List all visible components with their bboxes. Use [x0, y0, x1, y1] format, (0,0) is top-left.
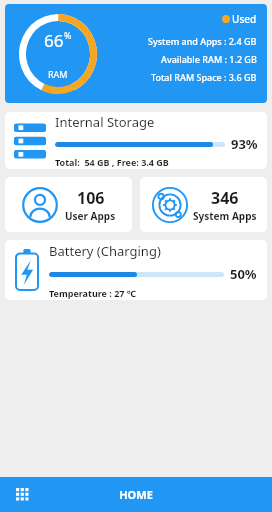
- button[interactable]: Apps grid: [0, 477, 272, 512]
- staticText: %: [64, 29, 72, 41]
- staticText: RAM: [48, 68, 68, 80]
- other: Battery charging: [15, 249, 39, 291]
- staticText: 50%: [230, 265, 257, 283]
- other: User apps: [21, 186, 59, 224]
- staticText: Battery (Charging): [49, 242, 161, 260]
- other: Storage: [14, 123, 46, 159]
- staticText: Internal Storage: [55, 113, 155, 131]
- staticText: User Apps: [65, 209, 116, 223]
- staticText: Available RAM : 1.2 GB: [161, 53, 257, 65]
- button[interactable]: User apps: [5, 177, 132, 232]
- staticText: System Apps: [193, 209, 257, 223]
- staticText: 93%: [231, 135, 258, 153]
- staticText: System and Apps : 2.4 GB: [148, 35, 257, 47]
- button[interactable]: System apps: [140, 177, 267, 232]
- staticText: HOME: [119, 487, 153, 502]
- staticText: Temperature : 27 ℃: [49, 287, 136, 299]
- button[interactable]: Apps grid: [10, 482, 36, 508]
- other: System apps: [151, 186, 189, 224]
- staticText: 66: [44, 29, 64, 52]
- button[interactable]: Storage: [5, 112, 267, 169]
- staticText: 346: [211, 187, 239, 209]
- staticText: Used: [232, 12, 257, 26]
- staticText: Total RAM Space : 3.6 GB: [151, 71, 257, 83]
- button[interactable]: Battery charging: [5, 240, 267, 300]
- staticText: 106: [77, 187, 105, 209]
- button[interactable]: 66: [5, 4, 267, 103]
- staticText: Total: 54 GB , Free: 3.4 GB: [55, 156, 169, 168]
